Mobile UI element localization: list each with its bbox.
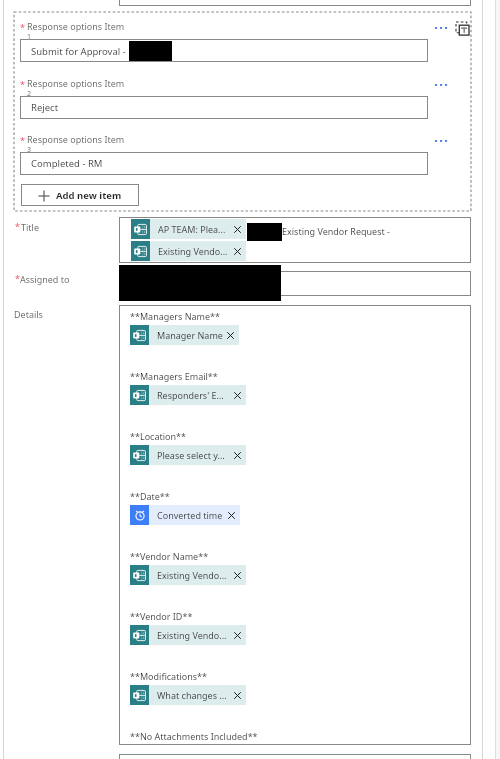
staticText: Existing Vendo...: [158, 245, 228, 257]
button[interactable]: Responders' E...: [130, 385, 246, 405]
staticText: 3: [27, 145, 32, 155]
button[interactable]: Please select y...: [130, 445, 246, 465]
staticText: 2: [27, 89, 32, 99]
staticText: **Managers Name**: [130, 310, 221, 322]
staticText: Title: [21, 221, 39, 233]
staticText: **No Attachments Included**: [130, 730, 258, 742]
staticText: Manager Name: [157, 329, 223, 341]
staticText: **Date**: [130, 490, 170, 502]
button[interactable]: More options: [430, 78, 452, 92]
staticText: Assigned to: [20, 273, 70, 285]
staticText: Converted time: [157, 509, 223, 521]
staticText: 1: [27, 32, 32, 42]
staticText: Responders' E...: [157, 389, 224, 401]
button[interactable]: Existing Vendo...: [130, 565, 246, 585]
staticText: Add new item: [56, 189, 122, 202]
staticText: **Vendor Name**: [130, 550, 209, 562]
staticText: **Managers Email**: [130, 370, 218, 382]
staticText: Existing Vendor Request -: [282, 225, 393, 237]
staticText: *: [20, 21, 25, 33]
staticText: Response options Item: [27, 20, 125, 32]
button[interactable]: More options: [430, 21, 452, 35]
staticText: Response options Item: [27, 133, 125, 145]
staticText: Please select y...: [157, 449, 225, 461]
staticText: **Modifications**: [130, 670, 207, 682]
button[interactable]: [119, 305, 471, 745]
staticText: *: [15, 220, 20, 232]
staticText: Submit for Approval -: [31, 45, 129, 58]
staticText: Existing Vendo...: [157, 629, 227, 641]
staticText: *: [20, 134, 25, 146]
staticText: **Location**: [130, 430, 186, 442]
staticText: Reject: [31, 101, 59, 114]
staticText: Existing Vendo...: [157, 569, 227, 581]
button[interactable]: Existing Vendo...: [131, 241, 246, 261]
button[interactable]: [119, 271, 471, 296]
button[interactable]: Manager Name: [130, 325, 239, 345]
staticText: Completed - RM: [31, 157, 103, 170]
button[interactable]: Reject: [20, 96, 428, 119]
button[interactable]: Existing Vendo...: [130, 625, 246, 645]
staticText: **Vendor ID**: [130, 610, 193, 622]
button[interactable]: More options: [430, 134, 452, 148]
button[interactable]: What changes ...: [130, 685, 246, 705]
staticText: Response options Item: [27, 77, 125, 89]
button[interactable]: Converted time: [130, 505, 240, 525]
staticText: *: [15, 272, 20, 284]
staticText: AP TEAM: Plea...: [158, 223, 226, 235]
button[interactable]: Completed - RM: [20, 152, 428, 175]
button[interactable]: [119, 217, 471, 263]
staticText: *: [20, 78, 25, 90]
button[interactable]: Insert dynamic text: [455, 21, 471, 37]
button[interactable]: AP TEAM: Plea...: [131, 219, 246, 239]
staticText: Details: [14, 308, 43, 320]
button[interactable]: Submit for Approval -: [20, 39, 428, 62]
staticText: What changes ...: [157, 689, 227, 701]
button[interactable]: Add new item: [21, 184, 139, 206]
